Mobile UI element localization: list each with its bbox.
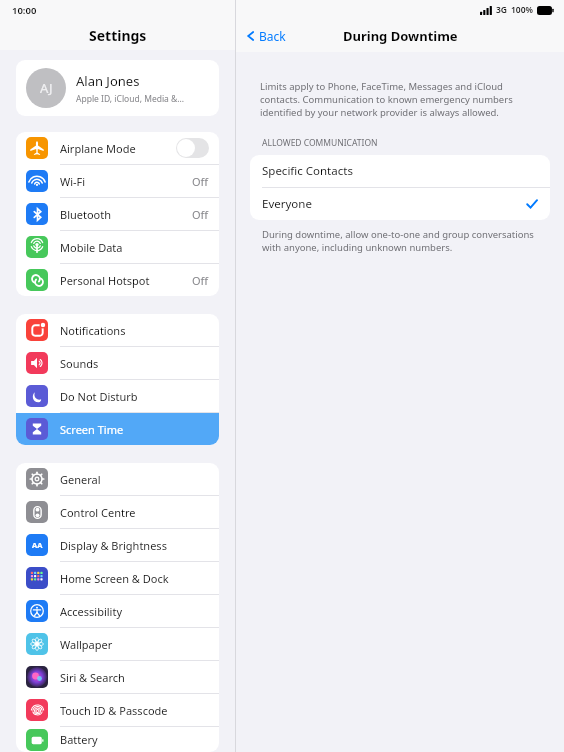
staticText: Off (192, 273, 209, 288)
button[interactable]: Home Screen & Dock (16, 562, 219, 594)
staticText: Control Centre (60, 505, 209, 520)
staticText: 10:00 (12, 4, 37, 17)
staticText: Accessibility (60, 604, 209, 619)
button[interactable]: Battery (16, 727, 219, 752)
staticText: Limits apply to Phone, FaceTime, Message… (260, 80, 540, 119)
staticText: Personal Hotspot (60, 273, 192, 288)
other: Selected (526, 198, 538, 210)
staticText: Settings (89, 26, 147, 45)
button[interactable]: Everyone (250, 188, 550, 220)
button[interactable]: Control Centre (16, 496, 219, 528)
button[interactable]: Touch ID & Passcode (16, 694, 219, 726)
button[interactable]: Screen Time (16, 413, 219, 445)
button[interactable]: Siri & Search (16, 661, 219, 693)
button[interactable]: Wallpaper (16, 628, 219, 660)
staticText: Bluetooth (60, 207, 192, 222)
staticText: AA (32, 540, 43, 550)
staticText: Off (192, 174, 209, 189)
button[interactable]: Accessibility (16, 595, 219, 627)
staticText: Wi-Fi (60, 174, 192, 189)
staticText: Mobile Data (60, 240, 209, 255)
staticText: During downtime, allow one-to-one and gr… (262, 228, 538, 254)
staticText: Do Not Disturb (60, 389, 209, 404)
button[interactable]: AJ (16, 60, 219, 116)
staticText: Alan Jones (76, 72, 140, 90)
button[interactable]: Airplane Mode toggle (176, 138, 209, 158)
staticText: ALLOWED COMMUNICATION (262, 137, 378, 149)
staticText: Touch ID & Passcode (60, 703, 209, 718)
staticText: Back (259, 28, 286, 44)
button[interactable]: Notifications (16, 314, 219, 346)
staticText: General (60, 472, 209, 487)
staticText: Specific Contacts (262, 163, 353, 179)
button[interactable]: Wi-Fi (16, 165, 219, 197)
button[interactable]: Sounds (16, 347, 219, 379)
staticText: Everyone (262, 196, 526, 212)
button[interactable]: Personal Hotspot (16, 264, 219, 296)
staticText: Apple ID, iCloud, Media &... (76, 93, 185, 105)
staticText: Airplane Mode (60, 141, 176, 156)
staticText: AJ (40, 79, 53, 97)
staticText: Off (192, 207, 209, 222)
staticText: Siri & Search (60, 670, 209, 685)
staticText: During Downtime (343, 27, 458, 45)
staticText: 100% (511, 4, 534, 16)
button[interactable]: Mobile Data (16, 231, 219, 263)
button[interactable]: Bluetooth (16, 198, 219, 230)
staticText: Display & Brightness (60, 538, 209, 553)
staticText: Battery (60, 732, 209, 747)
button[interactable]: Do Not Disturb (16, 380, 219, 412)
staticText: Screen Time (60, 422, 209, 437)
staticText: 3G (496, 4, 508, 16)
button[interactable]: Airplane Mode (16, 132, 219, 164)
button[interactable]: General (16, 463, 219, 495)
staticText: Wallpaper (60, 637, 209, 652)
staticText: Home Screen & Dock (60, 571, 209, 586)
button[interactable]: AA (16, 529, 219, 561)
button[interactable]: Specific Contacts (250, 155, 550, 187)
button[interactable]: Back (246, 28, 286, 44)
staticText: Sounds (60, 356, 209, 371)
staticText: Notifications (60, 323, 209, 338)
